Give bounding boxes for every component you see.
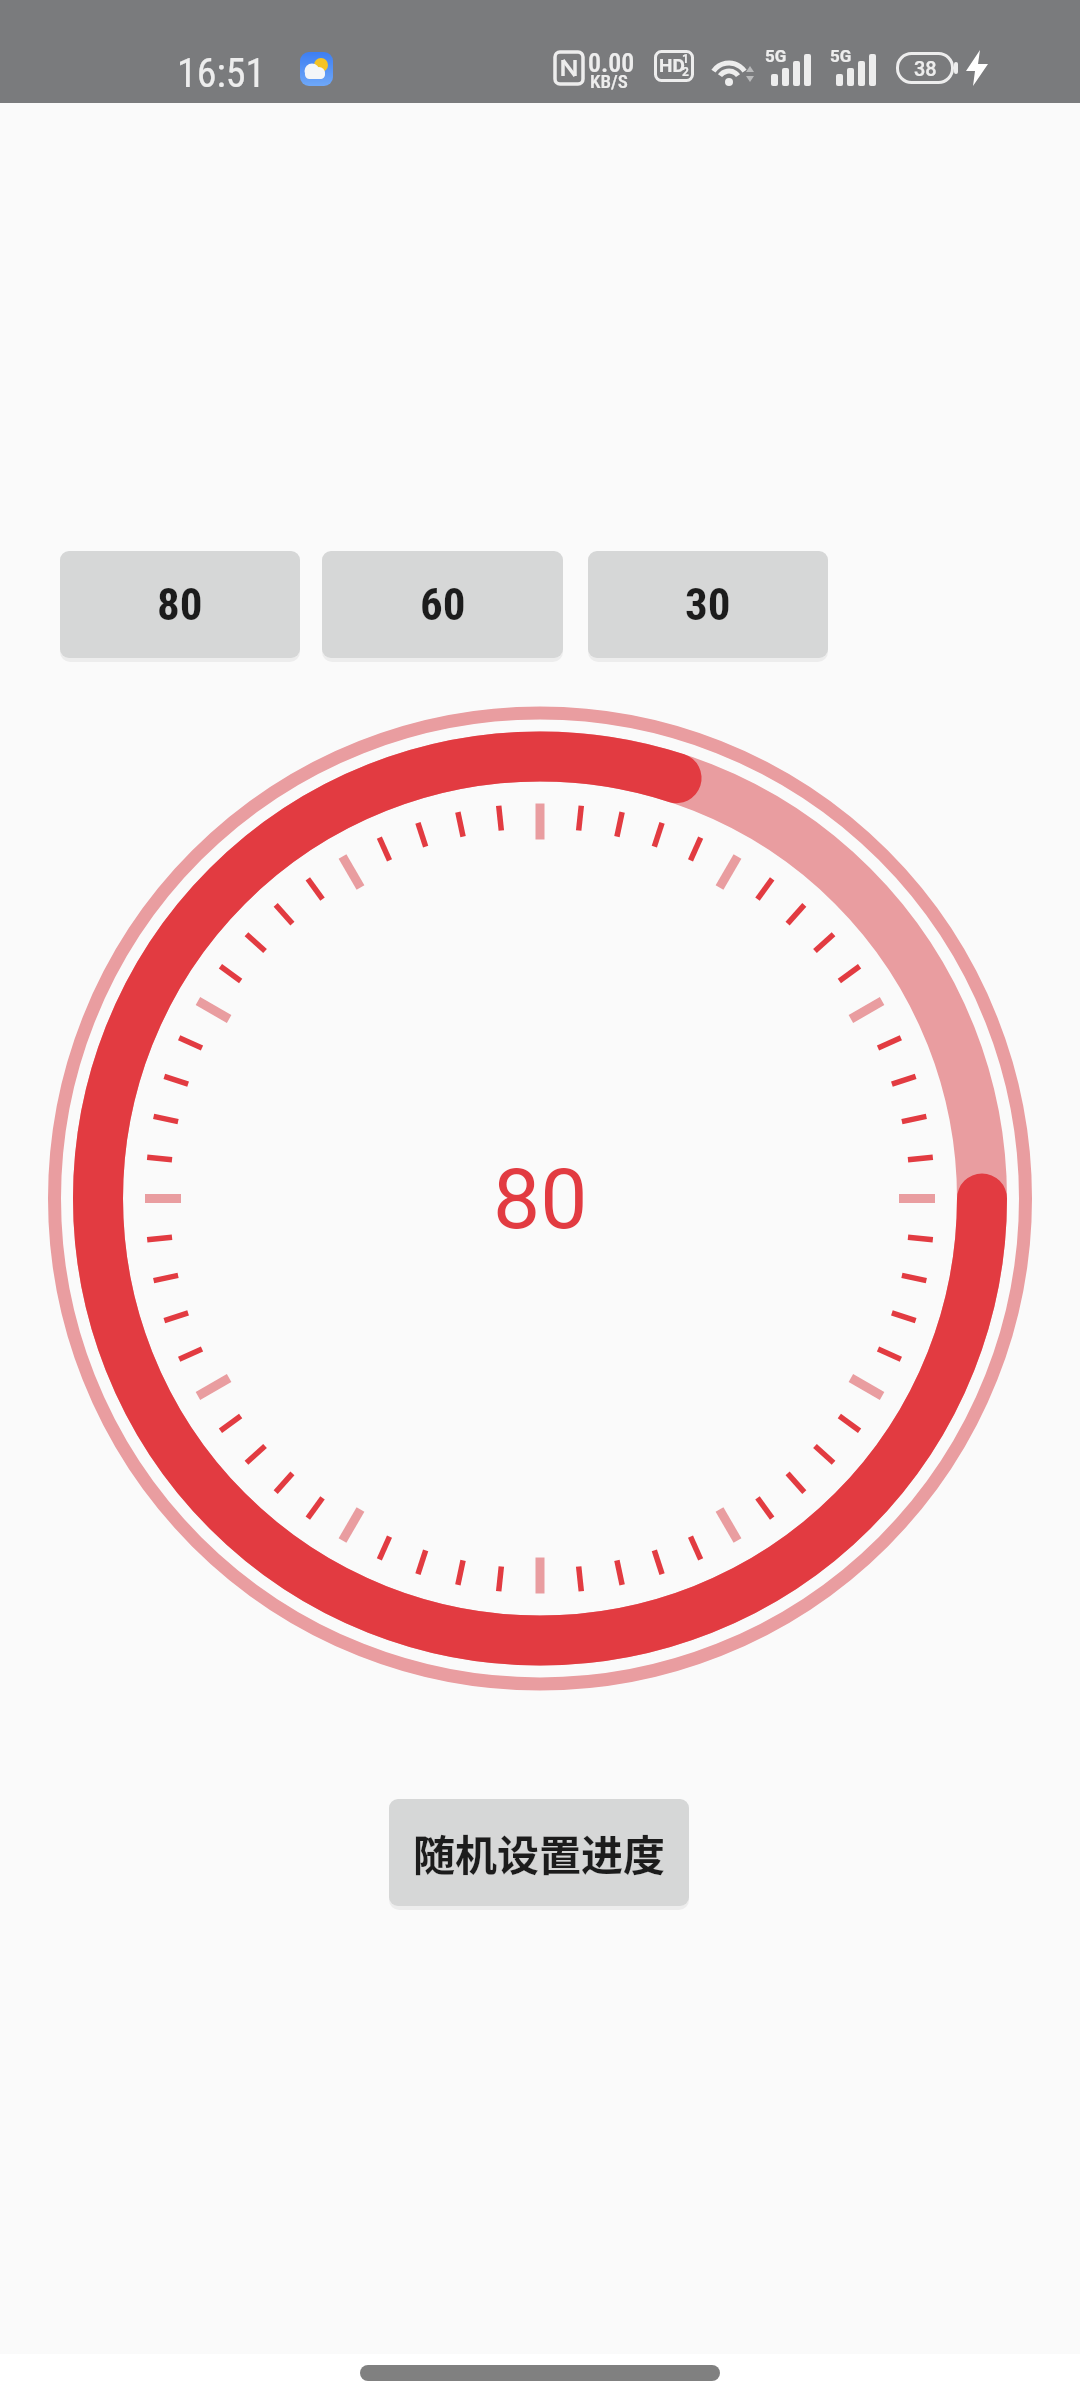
staticText: 80 [157, 578, 203, 631]
button[interactable]: 60 [322, 551, 563, 658]
staticText: KB/S [590, 70, 628, 92]
staticText: 5G [830, 46, 852, 66]
staticText: 80 [493, 1150, 588, 1248]
button[interactable]: 80 [60, 551, 300, 658]
staticText: 随机设置进度 [413, 1822, 666, 1883]
button[interactable]: 30 [588, 551, 828, 658]
staticText: 16:51 [177, 50, 266, 97]
button[interactable]: 随机设置进度 [389, 1799, 689, 1906]
staticText: 1 [682, 52, 689, 66]
staticText: 38 [914, 57, 937, 80]
staticText: 30 [685, 578, 731, 631]
staticText: 60 [420, 578, 466, 631]
staticText: 5G [765, 46, 787, 66]
staticText: 0.00 [588, 48, 635, 78]
staticText: 2 [682, 65, 689, 79]
staticText: HD [659, 54, 685, 76]
